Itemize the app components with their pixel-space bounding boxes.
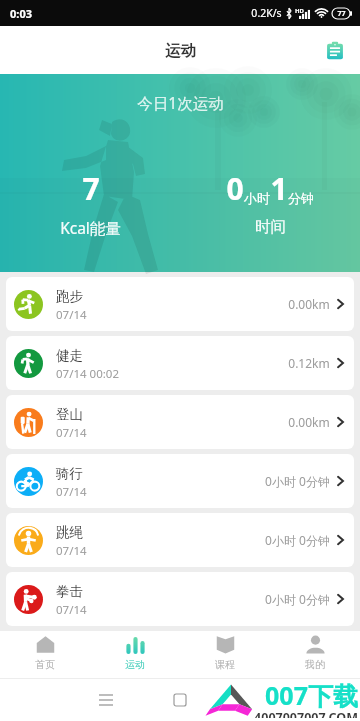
staticText: 0.2K/s — [251, 6, 282, 20]
button[interactable]: 首页 — [0, 631, 90, 678]
button[interactable]: 拳击 — [6, 572, 354, 626]
staticText: Kcal能量 — [60, 217, 121, 238]
staticText: 4007007007.COM — [254, 709, 358, 718]
staticText: 运动 — [165, 41, 196, 61]
button[interactable]: 课程 — [180, 631, 270, 678]
staticText: HD — [295, 7, 304, 15]
staticText: 登山 — [56, 406, 83, 423]
staticText: 0小时 0分钟 — [265, 532, 330, 548]
button[interactable]: 我的 — [270, 631, 360, 678]
staticText: 77 — [337, 9, 346, 19]
staticText: 跳绳 — [56, 524, 83, 541]
staticText: 007下载 — [265, 678, 358, 712]
staticText: 07/14 — [56, 484, 87, 500]
staticText: 0.00km — [288, 414, 330, 430]
staticText: 小时 — [244, 190, 270, 206]
button[interactable]: 跑步 — [6, 277, 354, 331]
staticText: 0:03 — [10, 6, 32, 21]
staticText: 7 — [82, 168, 100, 209]
staticText: 今日1次运动 — [137, 92, 224, 113]
staticText: 时间 — [255, 217, 286, 237]
staticText: 首页 — [35, 658, 55, 671]
button[interactable]: 骑行 — [6, 454, 354, 508]
staticText: 运动 — [125, 658, 145, 671]
staticText: 健走 — [56, 347, 83, 364]
staticText: 07/14 — [56, 602, 87, 618]
staticText: 07/14 00:02 — [56, 366, 119, 382]
staticText: 0 — [226, 168, 244, 209]
staticText: 拳击 — [56, 583, 83, 600]
button[interactable]: 运动 — [90, 631, 180, 678]
button[interactable]: Records — [324, 39, 346, 61]
staticText: 0小时 0分钟 — [265, 473, 330, 489]
button[interactable]: 登山 — [6, 395, 354, 449]
staticText: 0.00km — [288, 296, 330, 312]
staticText: 07/14 — [56, 307, 87, 323]
button[interactable]: 跳绳 — [6, 513, 354, 567]
staticText: 分钟 — [288, 190, 314, 206]
button[interactable]: Home — [166, 686, 194, 714]
staticText: 课程 — [215, 658, 235, 671]
staticText: 0.12km — [288, 355, 330, 371]
button[interactable]: 健走 — [6, 336, 354, 390]
staticText: 07/14 — [56, 543, 87, 559]
staticText: 0小时 0分钟 — [265, 591, 330, 607]
staticText: 骑行 — [56, 465, 83, 482]
staticText: 07/14 — [56, 425, 87, 441]
staticText: 我的 — [305, 658, 325, 671]
staticText: 跑步 — [56, 288, 83, 305]
button[interactable]: Recent apps — [92, 686, 120, 714]
staticText: 1 — [270, 168, 288, 209]
